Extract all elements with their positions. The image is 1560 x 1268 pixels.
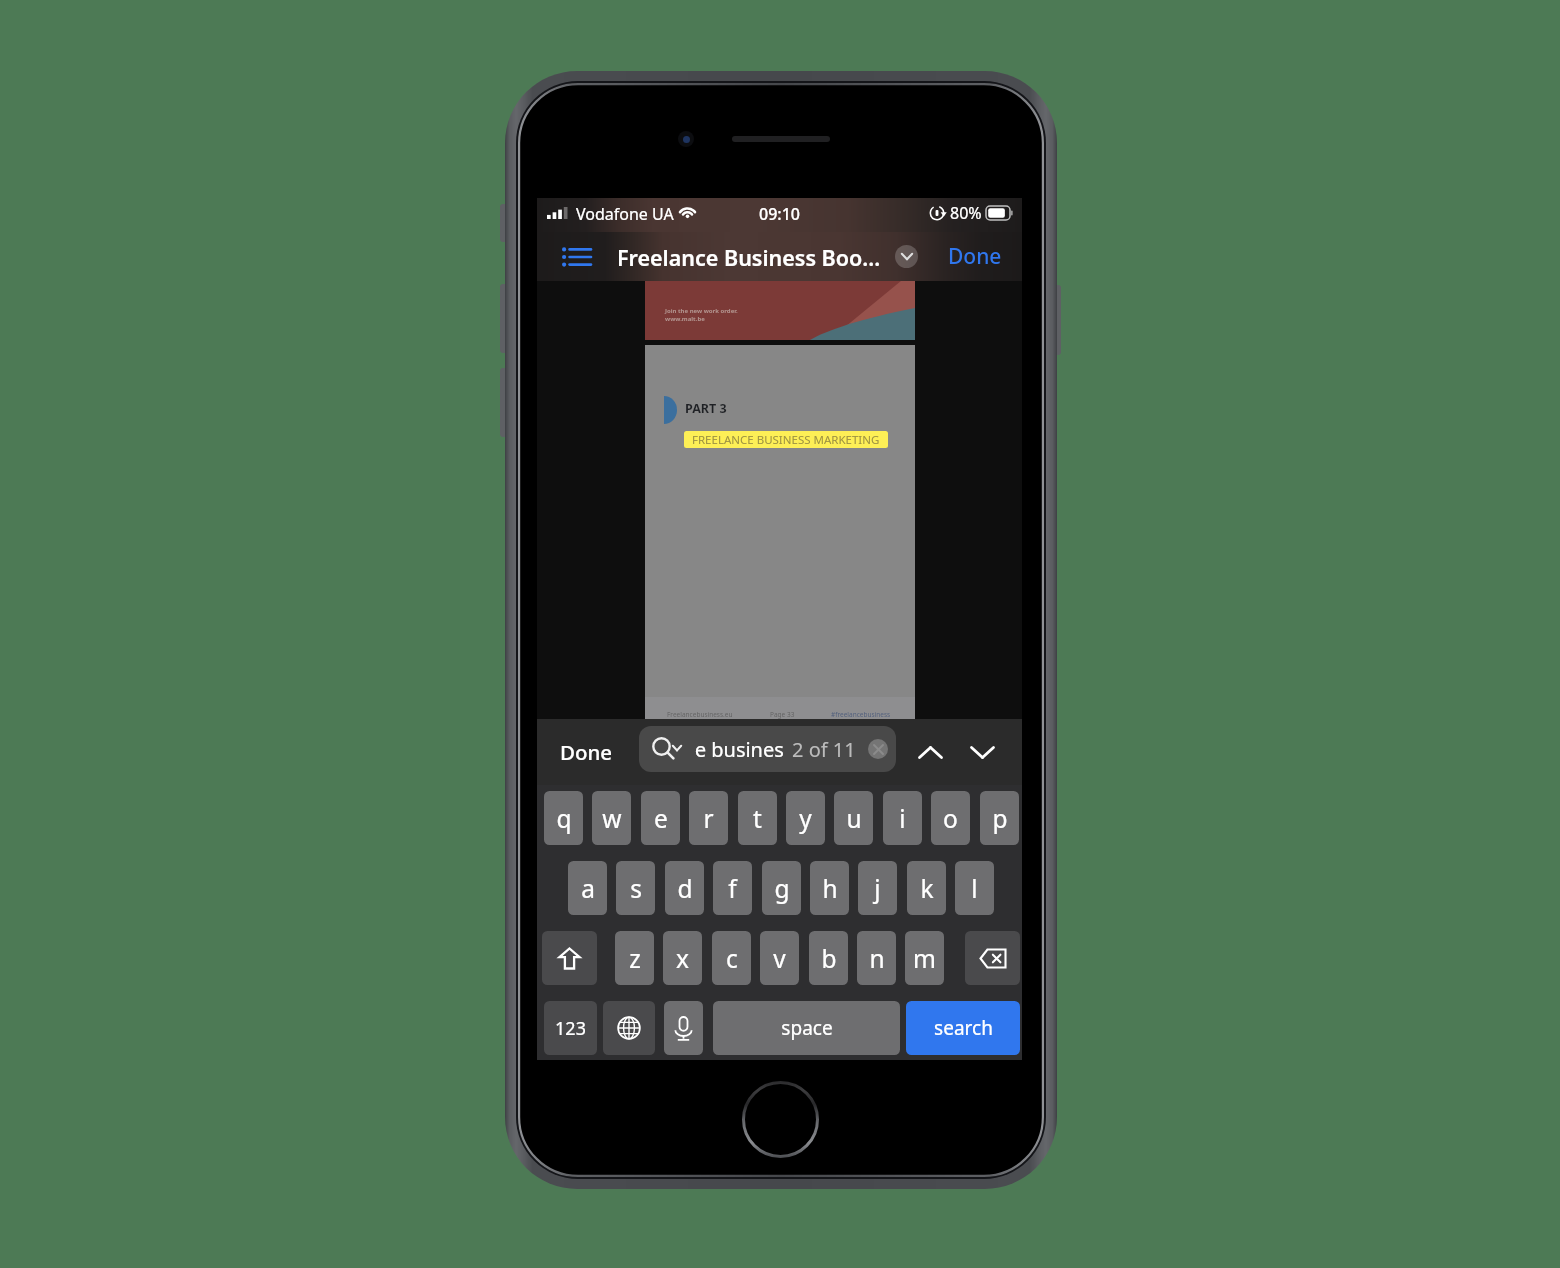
button[interactable]: t: [738, 791, 777, 845]
button[interactable]: m: [905, 931, 944, 985]
staticText: Done: [948, 242, 1002, 271]
button[interactable]: Dictate: [664, 1001, 703, 1055]
staticText: Join the new work order.: [665, 307, 738, 315]
staticText: Page 33: [770, 710, 795, 719]
staticText: r: [703, 802, 714, 835]
button[interactable]: Next result: [960, 730, 1004, 774]
button[interactable]: Show more: [888, 238, 925, 275]
staticText: e: [654, 802, 668, 835]
button[interactable]: j: [858, 861, 897, 915]
staticText: 2 of 11: [792, 736, 856, 763]
staticText: z: [629, 942, 641, 975]
staticText: g: [774, 872, 790, 905]
button[interactable]: x: [663, 931, 702, 985]
staticText: u: [846, 802, 862, 835]
staticText: #freelancebusiness: [831, 710, 891, 719]
staticText: i: [899, 802, 906, 835]
staticText: y: [799, 802, 812, 835]
button[interactable]: q: [544, 791, 583, 845]
staticText: Freelance Business Boo...: [617, 243, 881, 272]
staticText: PART 3: [685, 400, 727, 417]
staticText: f: [728, 872, 737, 905]
staticText: b: [821, 942, 837, 975]
button[interactable]: Done: [537, 719, 637, 785]
button[interactable]: u: [834, 791, 873, 845]
button[interactable]: c: [712, 931, 751, 985]
staticText: е busines: [695, 736, 784, 763]
staticText: l: [971, 872, 978, 905]
staticText: 09:10: [759, 203, 800, 225]
staticText: Freelancebusiness.eu: [667, 710, 733, 719]
staticText: FREELANCE BUSINESS MARKETING: [692, 432, 880, 448]
staticText: d: [677, 872, 693, 905]
button[interactable]: search: [906, 1001, 1020, 1055]
staticText: w: [602, 802, 622, 835]
staticText: c: [726, 942, 738, 975]
button[interactable]: y: [786, 791, 825, 845]
button[interactable]: g: [762, 861, 801, 915]
button[interactable]: 123: [544, 1001, 597, 1055]
button[interactable]: d: [665, 861, 704, 915]
button[interactable]: i: [883, 791, 922, 845]
button[interactable]: Clear search: [868, 739, 888, 759]
button[interactable]: n: [857, 931, 896, 985]
button[interactable]: s: [616, 861, 655, 915]
button[interactable]: Shift: [542, 931, 597, 985]
staticText: o: [943, 802, 958, 835]
button[interactable]: e: [641, 791, 680, 845]
staticText: s: [630, 872, 642, 905]
button[interactable]: f: [713, 861, 752, 915]
staticText: j: [874, 872, 881, 905]
button[interactable]: w: [592, 791, 631, 845]
button[interactable]: Change keyboard: [603, 1001, 655, 1055]
button[interactable]: k: [907, 861, 946, 915]
staticText: h: [822, 872, 838, 905]
staticText: n: [869, 942, 885, 975]
button[interactable]: z: [615, 931, 654, 985]
staticText: m: [913, 942, 936, 975]
staticText: a: [581, 872, 595, 905]
staticText: 123: [555, 1016, 586, 1041]
staticText: x: [676, 942, 689, 975]
staticText: Done: [560, 738, 613, 766]
staticText: search: [934, 1015, 993, 1041]
staticText: www.malt.be: [665, 315, 705, 323]
button[interactable]: b: [809, 931, 848, 985]
staticText: space: [781, 1015, 833, 1041]
staticText: p: [992, 802, 1008, 835]
button[interactable]: space: [713, 1001, 900, 1055]
button[interactable]: l: [955, 861, 994, 915]
staticText: v: [773, 942, 786, 975]
staticText: k: [920, 872, 934, 905]
button[interactable]: Done: [928, 232, 1022, 281]
staticText: Vodafone UA: [576, 203, 674, 225]
staticText: t: [753, 802, 762, 835]
button[interactable]: Table of contents: [549, 232, 597, 281]
button[interactable]: Previous result: [908, 730, 952, 774]
button[interactable]: v: [760, 931, 799, 985]
staticText: 80%: [950, 202, 982, 224]
button[interactable]: е busines: [639, 726, 896, 772]
button[interactable]: r: [689, 791, 728, 845]
button[interactable]: h: [810, 861, 849, 915]
button[interactable]: p: [980, 791, 1019, 845]
button[interactable]: Backspace: [965, 931, 1020, 985]
staticText: q: [556, 802, 572, 835]
button[interactable]: o: [931, 791, 970, 845]
button[interactable]: a: [568, 861, 607, 915]
